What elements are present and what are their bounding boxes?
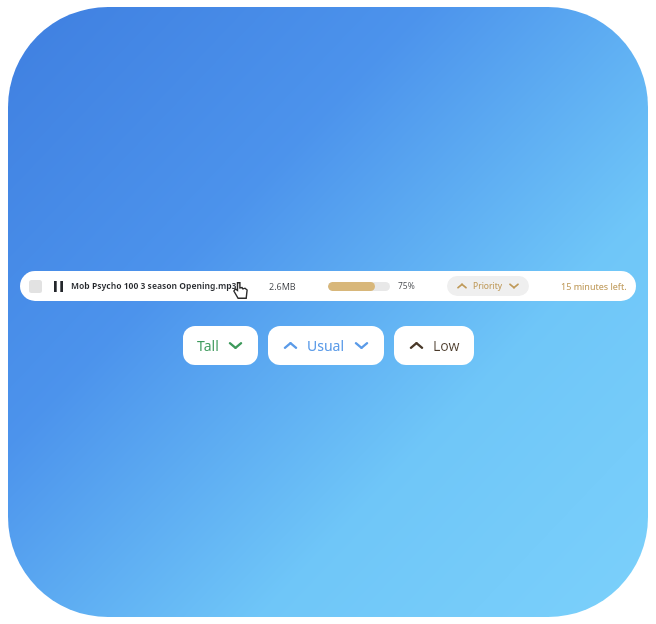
button[interactable]: Tall [183,326,258,365]
button[interactable]: Usual [268,326,384,365]
staticText: 2.6MB [269,280,296,292]
staticText: Tall [197,336,219,355]
staticText: Low [433,336,460,355]
button[interactable]: Pause [52,279,65,294]
button[interactable]: Pause [20,271,636,301]
button[interactable]: Low [394,326,474,365]
staticText: Priority [473,280,503,292]
staticText: 15 minutes left. [561,280,627,292]
staticText: 75% [398,280,415,292]
button[interactable]: Priority [447,276,529,296]
staticText: Mob Psycho 100 3 season Opening.mp3 [71,280,237,292]
staticText: Usual [307,336,345,355]
